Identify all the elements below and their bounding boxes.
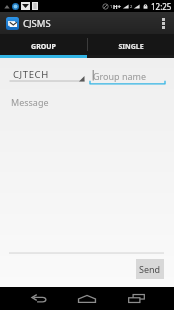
button[interactable]: CJTECH [0,58,87,287]
staticText: 1 [110,4,113,9]
button[interactable]: Group name [87,58,174,287]
staticText: H+ [113,3,122,11]
staticText: GROUP [31,42,56,52]
button[interactable]: Home [72,287,102,310]
button[interactable]: Send [136,259,164,279]
staticText: Message [11,96,49,108]
staticText: 12:25 [151,1,172,12]
button[interactable]: GROUP [0,34,87,55]
staticText: Send [139,263,161,275]
staticText: CJTECH [13,68,49,81]
staticText: 2 [130,4,133,9]
button[interactable]: Back [24,287,54,310]
staticText: Group name [93,70,147,82]
button[interactable]: SINGLE [87,34,174,55]
button[interactable]: More options [152,12,174,34]
staticText: SINGLE [118,42,144,52]
button[interactable]: Message [0,58,174,287]
button[interactable]: Recent apps [121,287,151,310]
staticText: CJSMS [23,17,51,30]
